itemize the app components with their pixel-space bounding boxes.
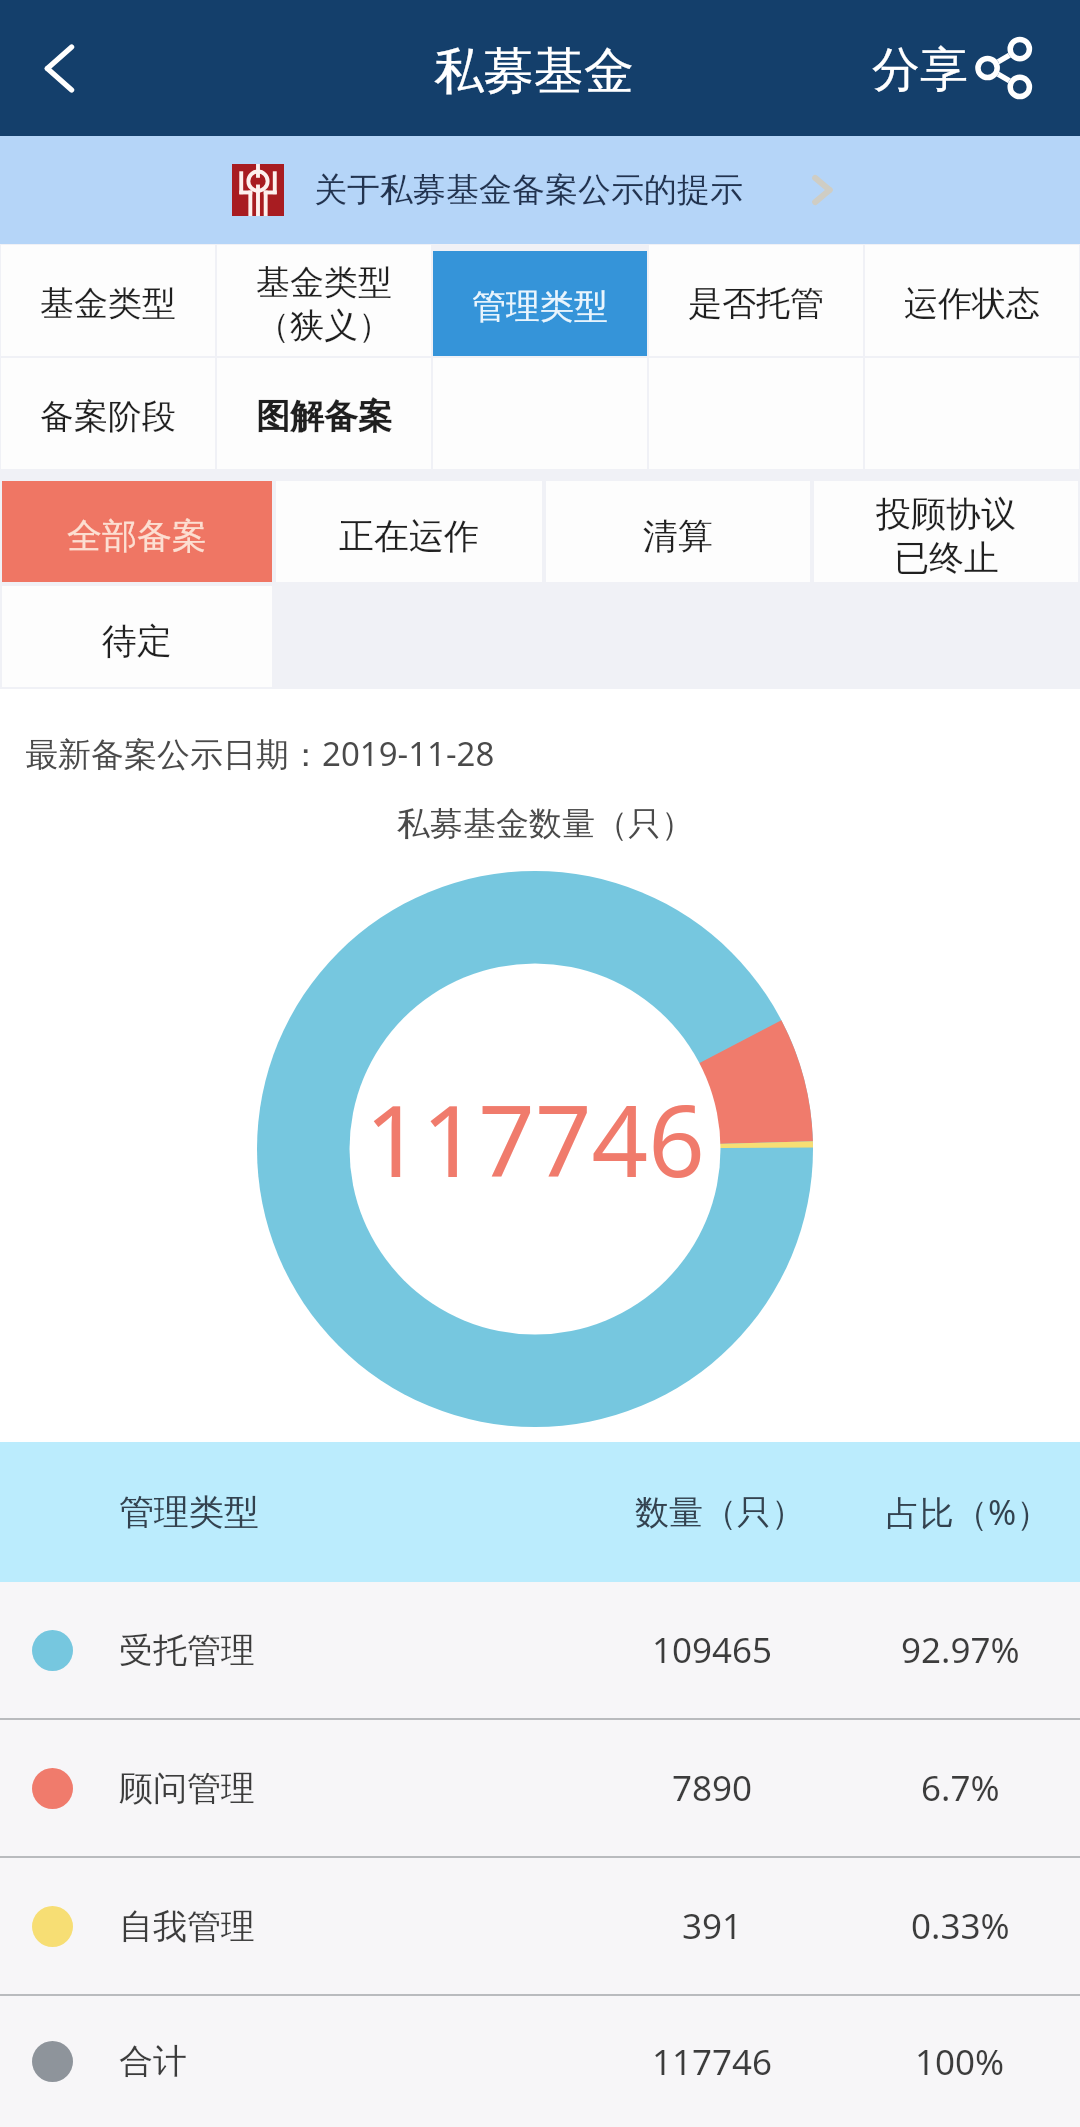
staticText: 备案阶段 — [40, 395, 176, 438]
button[interactable]: 管理类型 — [433, 251, 647, 356]
button[interactable]: 基金类型 — [1, 245, 215, 356]
staticText: 391 — [682, 1902, 743, 1950]
staticText: 自我管理 — [119, 1905, 255, 1948]
button[interactable]: 基金类型 — [217, 245, 431, 356]
staticText: 关于私募基金备案公示的提示 — [314, 169, 743, 211]
button[interactable]: 投顾协议 — [814, 481, 1078, 582]
button[interactable]: 待定 — [2, 586, 272, 687]
button[interactable]: 自我管理 — [0, 1858, 1080, 1994]
button[interactable]: 分享 — [872, 37, 1035, 99]
staticText: 数量（只） — [635, 1491, 805, 1534]
staticText: 92.97% — [901, 1626, 1020, 1674]
staticText: 管理类型 — [472, 285, 608, 328]
button[interactable]: 正在运作 — [276, 481, 542, 582]
button[interactable]: 运作状态 — [865, 245, 1079, 356]
staticText: 占比（%） — [886, 1489, 1051, 1535]
staticText: 基金类型 — [256, 261, 392, 304]
staticText: 117746 — [652, 2038, 773, 2086]
staticText: 私募基金数量（只） — [397, 803, 694, 845]
staticText: 投顾协议 — [876, 492, 1016, 536]
staticText: 最新备案公示日期：2019-11-28 — [25, 731, 495, 776]
button[interactable]: Back — [0, 0, 116, 136]
staticText: 受托管理 — [119, 1629, 255, 1672]
button[interactable]: 合计 — [0, 1996, 1080, 2127]
button[interactable]: 备案阶段 — [1, 358, 215, 469]
staticText: 图解备案 — [256, 395, 392, 438]
staticText: 117746 — [365, 1071, 705, 1206]
staticText: 是否托管 — [688, 282, 824, 325]
button[interactable]: 是否托管 — [649, 245, 863, 356]
staticText: 私募基金 — [434, 40, 634, 103]
staticText: 6.7% — [921, 1764, 1000, 1812]
button[interactable]: 关于私募基金备案公示的提示 — [0, 136, 1080, 244]
staticText: 7890 — [672, 1764, 753, 1812]
staticText: 顾问管理 — [119, 1767, 255, 1810]
staticText: （狭义） — [256, 304, 392, 347]
button[interactable]: 图解备案 — [217, 358, 431, 469]
staticText: 管理类型 — [119, 1490, 259, 1534]
staticText: 109465 — [652, 1626, 773, 1674]
button[interactable]: 顾问管理 — [0, 1720, 1080, 1856]
staticText: 基金类型 — [40, 282, 176, 325]
button[interactable]: 受托管理 — [0, 1582, 1080, 1718]
staticText: 全部备案 — [67, 514, 207, 558]
staticText: 运作状态 — [904, 282, 1040, 325]
staticText: 待定 — [102, 619, 172, 663]
staticText: 0.33% — [911, 1902, 1010, 1950]
staticText: 合计 — [119, 2040, 187, 2083]
staticText: 100% — [915, 2038, 1005, 2086]
button[interactable]: 清算 — [546, 481, 810, 582]
button[interactable]: 全部备案 — [2, 481, 272, 582]
staticText: 清算 — [643, 514, 713, 558]
staticText: 分享 — [872, 40, 968, 100]
staticText: 已终止 — [894, 536, 999, 580]
staticText: 正在运作 — [339, 514, 479, 558]
